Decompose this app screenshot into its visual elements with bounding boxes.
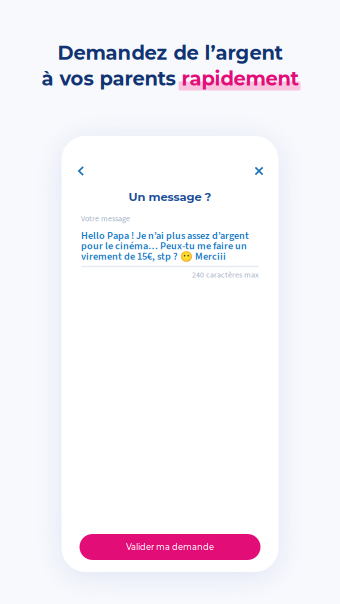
staticText: Valider ma demande (126, 542, 214, 552)
staticText: 240 caractères max (192, 269, 259, 281)
staticText: Un message ? (128, 190, 211, 204)
button[interactable]: Back (68, 160, 94, 182)
staticText: à vos parents (41, 67, 181, 90)
staticText: Demandez de l’argent (57, 41, 282, 65)
button[interactable]: Close (246, 160, 272, 182)
staticText: Hello Papa ! Je n’ai plus assez d’argent… (81, 228, 249, 264)
staticText: rapidement (181, 67, 298, 90)
staticText: Votre message (81, 213, 130, 224)
button[interactable]: Valider ma demande (79, 534, 260, 560)
